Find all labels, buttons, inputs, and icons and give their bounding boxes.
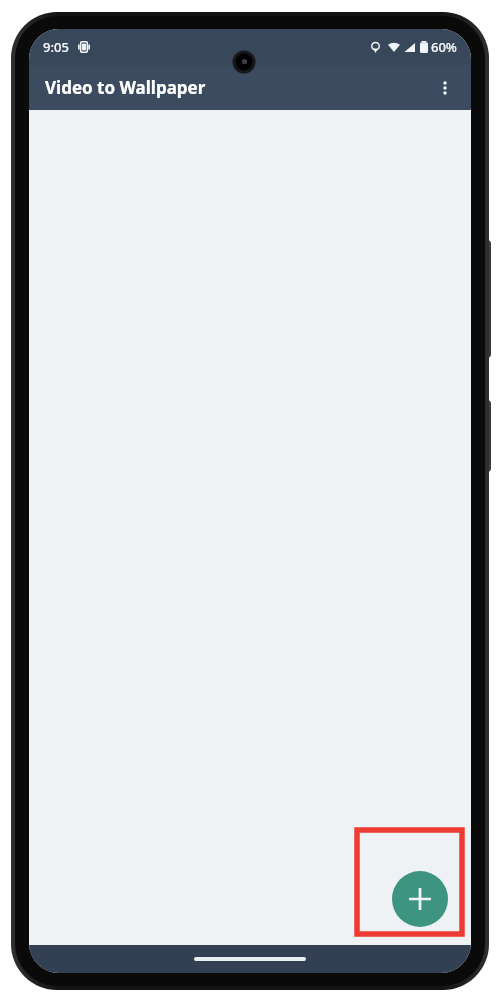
button[interactable]: Add video xyxy=(392,871,448,927)
button[interactable]: More options xyxy=(425,68,465,108)
staticText: 60% xyxy=(431,38,457,56)
staticText: Video to Wallpaper xyxy=(45,76,206,99)
staticText: 9:05 xyxy=(43,38,69,56)
